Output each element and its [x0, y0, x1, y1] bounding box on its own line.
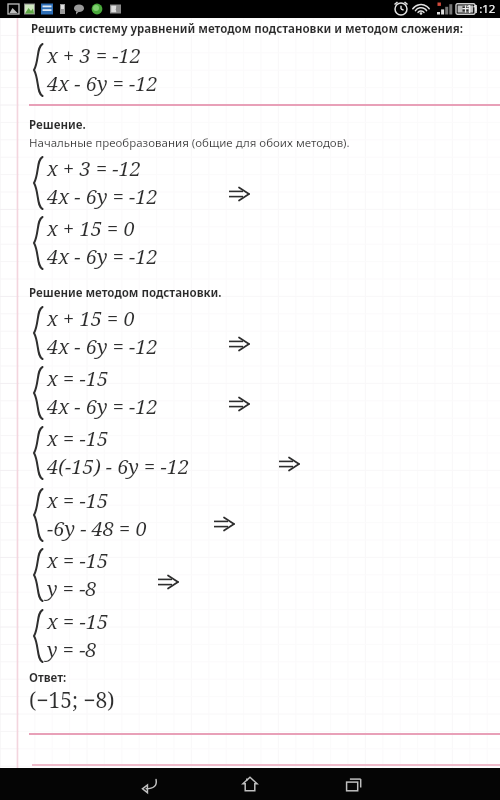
staticText: x + 3 = −12 — [47, 42, 141, 69]
staticText: x + 15 = 0 — [47, 305, 135, 332]
staticText: Ответ: — [29, 670, 67, 686]
button[interactable]: Home — [230, 768, 270, 800]
staticText: 4x − 6y = −12 — [47, 333, 158, 360]
staticText: y = −8 — [47, 636, 97, 663]
staticText: 4x − 6y = −12 — [47, 243, 158, 270]
staticText: Начальные преобразования (общие для обои… — [29, 135, 350, 151]
staticText: y = −8 — [47, 575, 97, 602]
staticText: x = −15 — [47, 608, 109, 635]
staticText: −6y − 48 = 0 — [47, 515, 147, 542]
staticText: 4x − 6y = −12 — [47, 393, 158, 420]
button[interactable]: Recent apps — [333, 768, 373, 800]
staticText: 4(−15) − 6y = −12 — [47, 453, 190, 480]
staticText: x = −15 — [47, 547, 109, 574]
staticText: 11:12 — [466, 1, 496, 17]
staticText: x = −15 — [47, 365, 109, 392]
staticText: (−15; −8) — [29, 686, 115, 715]
staticText: Решение. — [29, 117, 86, 133]
staticText: x + 15 = 0 — [47, 215, 135, 242]
staticText: Решение методом подстановки. — [29, 285, 222, 301]
staticText: x = −15 — [47, 425, 109, 452]
staticText: x + 3 = −12 — [47, 155, 141, 182]
button[interactable]: Back — [130, 768, 170, 800]
staticText: 4x − 6y = −12 — [47, 183, 158, 210]
staticText: Решить систему уравнений методом подстан… — [31, 21, 464, 37]
staticText: x = −15 — [47, 487, 109, 514]
staticText: 4x − 6y = −12 — [47, 70, 158, 97]
